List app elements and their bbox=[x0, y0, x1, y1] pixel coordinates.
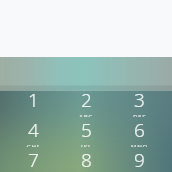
button[interactable]: Dial 7 bbox=[9, 147, 57, 172]
button[interactable]: Dial 5 bbox=[62, 117, 110, 147]
staticText: MNO bbox=[131, 143, 148, 147]
button[interactable]: Dial 8 bbox=[62, 147, 110, 172]
button[interactable]: Dial 9 bbox=[115, 147, 163, 172]
staticText: 3 bbox=[134, 87, 145, 113]
staticText: JKL bbox=[81, 143, 92, 147]
staticText: 9 bbox=[134, 147, 145, 172]
staticText: 7 bbox=[28, 147, 39, 172]
button[interactable]: Dial 6 bbox=[115, 117, 163, 147]
staticText: 1 bbox=[28, 87, 39, 113]
staticText: 6 bbox=[134, 117, 145, 143]
staticText: 5 bbox=[81, 117, 92, 143]
button[interactable]: Dial 2 bbox=[62, 87, 110, 117]
staticText: ABC bbox=[79, 113, 93, 117]
staticText: DEF bbox=[133, 113, 146, 117]
staticText: 8 bbox=[81, 147, 92, 172]
staticText: 2 bbox=[81, 87, 92, 113]
staticText: GHI bbox=[26, 143, 40, 147]
button[interactable]: Dial 3 bbox=[115, 87, 163, 117]
button[interactable]: Dial 4 bbox=[9, 117, 57, 147]
staticText: 4 bbox=[28, 117, 39, 143]
button[interactable]: Dial 1 bbox=[9, 87, 57, 117]
